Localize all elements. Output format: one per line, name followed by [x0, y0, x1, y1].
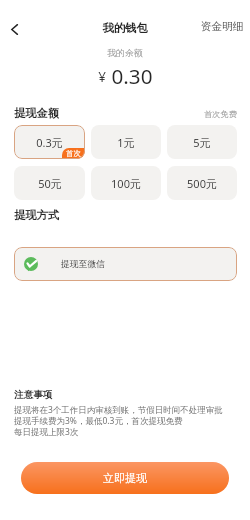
button[interactable]: Back	[0, 15, 29, 44]
button[interactable]: 100元	[91, 166, 161, 200]
staticText: 提现方式	[14, 208, 59, 222]
staticText: 首次免费	[204, 109, 237, 119]
staticText: 100元	[111, 176, 141, 191]
staticText: 提现金额	[14, 106, 59, 120]
button[interactable]: 500元	[167, 166, 237, 200]
button[interactable]: 资金明细	[192, 16, 250, 38]
button[interactable]: 1元	[91, 125, 161, 159]
staticText: 我的余额	[107, 47, 143, 58]
button[interactable]: 5元	[167, 125, 237, 159]
staticText: 注意事项	[14, 389, 53, 401]
staticText: 0.30	[111, 62, 153, 90]
button[interactable]: 50元	[14, 166, 85, 200]
staticText: 首次	[66, 149, 81, 158]
staticText: 提现将在3个工作日内审核到账，节假日时间不处理审批 提现手续费为3%，最低0.3…	[14, 404, 223, 438]
button[interactable]: 提现至微信	[14, 247, 237, 281]
button[interactable]: 0.3元	[14, 125, 85, 159]
staticText: 我的钱包	[102, 21, 148, 35]
staticText: 立即提现	[103, 471, 147, 485]
staticText: 50元	[38, 176, 62, 191]
staticText: 500元	[187, 176, 217, 191]
staticText: 0.3元	[36, 135, 63, 150]
staticText: ¥	[98, 68, 106, 86]
staticText: 5元	[193, 135, 211, 150]
button[interactable]: 立即提现	[21, 462, 229, 494]
staticText: 提现至微信	[61, 259, 105, 270]
staticText: 资金明细	[200, 20, 244, 34]
staticText: 1元	[117, 135, 135, 150]
